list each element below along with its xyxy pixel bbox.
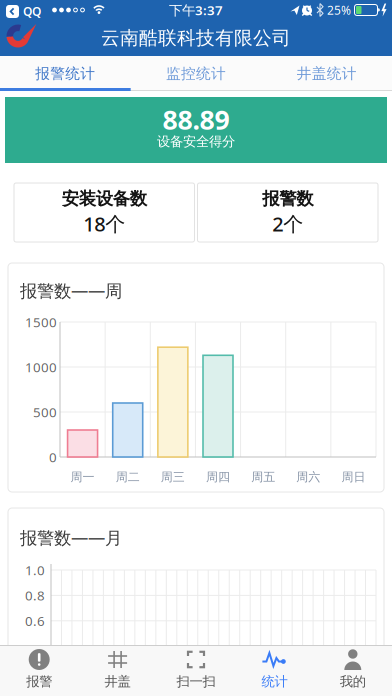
staticText: 我的 [340, 673, 366, 690]
staticText: 1500 [25, 313, 57, 331]
button[interactable]: 返回QQ [6, 3, 41, 19]
button[interactable]: 报警统计 [0, 56, 131, 91]
staticText: 周日 [341, 470, 365, 484]
button[interactable]: 监控统计 [131, 56, 261, 91]
staticText: 井盖统计 [297, 64, 357, 82]
staticText: 报警统计 [35, 64, 95, 82]
button[interactable]: 井盖统计 [261, 56, 392, 91]
staticText: 88.89 [162, 102, 229, 137]
staticText: QQ [23, 3, 41, 19]
staticText: 井盖 [105, 673, 131, 690]
button[interactable]: 我的 [314, 645, 392, 696]
staticText: 设备安全得分 [157, 133, 235, 150]
staticText: 周一 [71, 470, 95, 484]
staticText: 周四 [206, 470, 230, 484]
staticText: 扫一扫 [176, 673, 215, 690]
staticText: 1000 [25, 358, 57, 376]
staticText: 周三 [161, 470, 185, 484]
staticText: 统计 [261, 673, 287, 690]
staticText: 下午3:37 [169, 1, 223, 19]
staticText: 周六 [296, 470, 320, 484]
staticText: 报警 [26, 673, 52, 690]
button[interactable]: 扫一扫 [157, 645, 235, 696]
staticText: 2个 [272, 210, 303, 237]
staticText: 25% [327, 2, 351, 18]
staticText: 周二 [116, 470, 140, 484]
button[interactable]: 井盖 [78, 645, 157, 696]
staticText: 周五 [251, 470, 275, 484]
staticText: 报警数——周 [20, 279, 122, 302]
staticText: 安装设备数 [62, 188, 147, 209]
staticText: 500 [33, 403, 57, 421]
staticText: 0.6 [25, 612, 45, 630]
staticText: 监控统计 [166, 64, 226, 82]
staticText: 0 [49, 448, 57, 466]
staticText: 报警数——月 [20, 526, 122, 549]
button[interactable]: 报警 [0, 645, 78, 696]
staticText: 0.8 [25, 586, 45, 604]
button[interactable]: 统计 [235, 645, 314, 696]
staticText: 1.0 [25, 561, 45, 579]
staticText: 18个 [83, 210, 125, 237]
staticText: 报警数 [262, 188, 313, 209]
staticText: 云南酷联科技有限公司 [101, 26, 291, 49]
